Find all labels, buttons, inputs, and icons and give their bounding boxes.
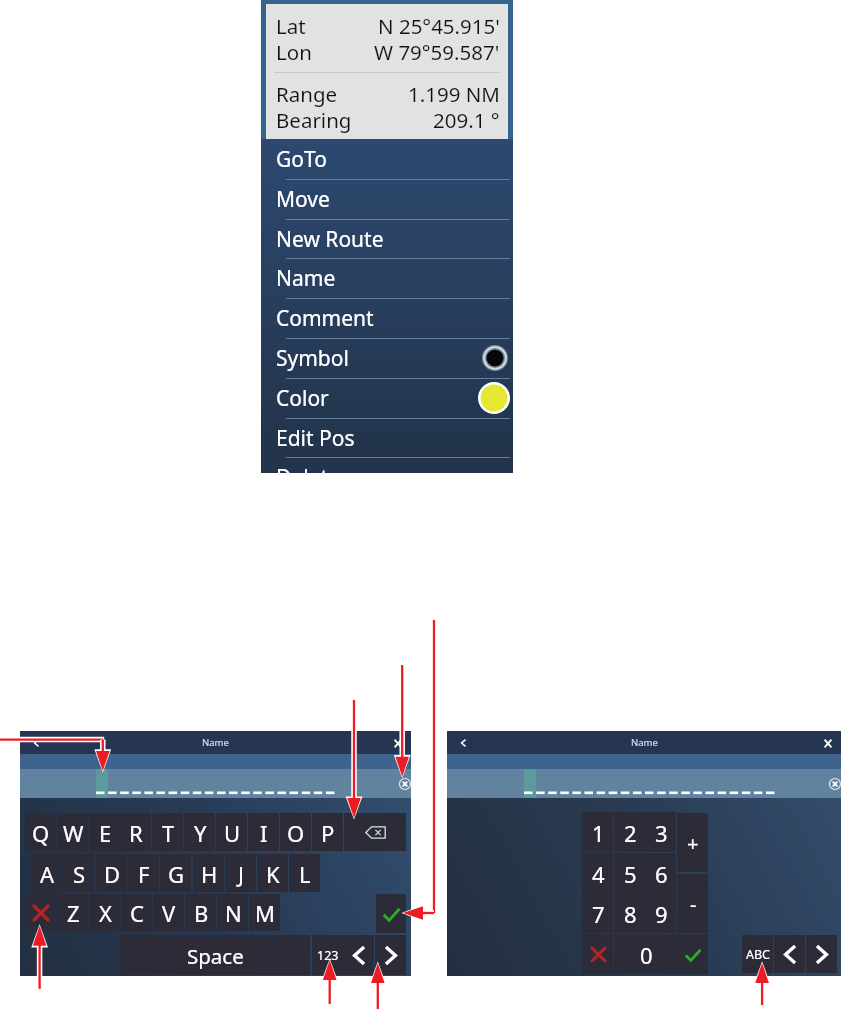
staticText: Bearing bbox=[276, 106, 352, 134]
button[interactable]: Next bbox=[375, 935, 407, 976]
staticText: Lon bbox=[276, 38, 312, 66]
button[interactable]: C bbox=[121, 894, 153, 932]
button[interactable]: B bbox=[185, 894, 217, 932]
button[interactable]: 4 bbox=[582, 853, 614, 894]
button[interactable]: X bbox=[89, 894, 121, 932]
button[interactable]: K bbox=[257, 854, 289, 893]
button[interactable]: Clear text bbox=[829, 778, 841, 790]
staticText: T bbox=[162, 818, 175, 848]
staticText: B bbox=[194, 898, 209, 928]
staticText: Name bbox=[631, 736, 658, 749]
button[interactable]: H bbox=[193, 854, 225, 893]
staticText: - bbox=[690, 891, 697, 918]
button[interactable]: S bbox=[63, 854, 95, 893]
button[interactable]: Move bbox=[261, 179, 513, 219]
button[interactable]: 5 bbox=[614, 853, 646, 894]
button[interactable]: I bbox=[248, 813, 280, 852]
staticText: Y bbox=[194, 818, 207, 848]
button[interactable]: Cancel bbox=[25, 894, 57, 932]
staticText: 1.199 NM bbox=[408, 80, 500, 108]
button[interactable]: J bbox=[225, 854, 257, 893]
staticText: Range bbox=[276, 80, 338, 108]
button[interactable]: E bbox=[89, 813, 121, 852]
button[interactable]: R bbox=[120, 813, 152, 852]
button[interactable]: Accept bbox=[376, 894, 407, 934]
staticText: Name bbox=[276, 264, 336, 293]
staticText: 6 bbox=[655, 859, 668, 889]
button[interactable]: L bbox=[289, 854, 321, 893]
button[interactable]: 123 bbox=[312, 935, 344, 976]
button[interactable]: Symbol bbox=[261, 338, 513, 378]
button[interactable]: N bbox=[217, 894, 249, 932]
button[interactable]: M bbox=[249, 894, 281, 932]
button[interactable]: U bbox=[216, 813, 248, 852]
staticText: Edit Pos bbox=[276, 424, 355, 453]
staticText: 8 bbox=[624, 899, 637, 929]
staticText: Comment bbox=[276, 304, 374, 333]
button[interactable]: Back bbox=[28, 735, 44, 751]
button[interactable]: 3 bbox=[645, 812, 677, 853]
button[interactable]: New Route bbox=[261, 219, 513, 259]
staticText: 5 bbox=[624, 859, 637, 889]
staticText: Z bbox=[67, 898, 80, 928]
staticText: 209.1 ° bbox=[433, 106, 500, 134]
button[interactable]: Backspace bbox=[344, 813, 407, 852]
button[interactable]: Previous bbox=[343, 935, 375, 976]
staticText: H bbox=[201, 859, 218, 889]
button[interactable]: - bbox=[677, 874, 709, 934]
staticText: V bbox=[162, 898, 176, 928]
button[interactable]: Close bbox=[390, 735, 406, 751]
button[interactable]: Accept bbox=[677, 934, 709, 975]
button[interactable]: O bbox=[280, 813, 312, 852]
staticText: X bbox=[99, 898, 112, 928]
staticText: + bbox=[687, 830, 699, 857]
button[interactable]: Delete bbox=[261, 457, 513, 497]
button[interactable]: 8 bbox=[614, 893, 646, 934]
button[interactable]: 0 bbox=[614, 934, 678, 975]
staticText: 3 bbox=[655, 818, 668, 848]
staticText: N 25°45.915' bbox=[378, 12, 500, 40]
button[interactable]: + bbox=[677, 813, 709, 873]
button[interactable]: A bbox=[31, 854, 63, 893]
button[interactable]: Y bbox=[184, 813, 216, 852]
button[interactable]: Back bbox=[455, 735, 471, 751]
staticText: A bbox=[40, 859, 55, 889]
button[interactable]: P bbox=[312, 813, 344, 852]
button[interactable]: T bbox=[152, 813, 184, 852]
button[interactable]: 7 bbox=[582, 893, 614, 934]
staticText: L bbox=[299, 859, 311, 889]
button[interactable]: D bbox=[96, 854, 128, 893]
staticText: J bbox=[238, 859, 245, 889]
button[interactable]: GoTo bbox=[261, 139, 513, 179]
staticText: Symbol bbox=[276, 344, 349, 373]
staticText: New Route bbox=[276, 225, 384, 254]
button[interactable]: Comment bbox=[261, 298, 513, 338]
staticText: 4 bbox=[592, 859, 605, 889]
button[interactable]: Previous bbox=[774, 935, 806, 974]
button[interactable]: Name bbox=[261, 258, 513, 298]
button[interactable]: Space bbox=[120, 935, 311, 976]
button[interactable]: 1 bbox=[582, 812, 614, 853]
button[interactable]: V bbox=[153, 894, 185, 932]
button[interactable]: Clear text bbox=[399, 778, 411, 790]
button[interactable]: G bbox=[160, 854, 192, 893]
button[interactable]: Z bbox=[57, 894, 89, 932]
staticText: 7 bbox=[592, 899, 605, 929]
staticText: Move bbox=[276, 185, 330, 214]
staticText: Q bbox=[32, 818, 50, 848]
button[interactable]: ABC bbox=[742, 935, 774, 974]
button[interactable]: Next bbox=[806, 935, 838, 974]
button[interactable]: Cancel bbox=[582, 934, 614, 975]
staticText: K bbox=[266, 859, 280, 889]
staticText: Delete bbox=[276, 463, 340, 492]
button[interactable]: Edit Pos bbox=[261, 418, 513, 458]
button[interactable]: 6 bbox=[645, 853, 677, 894]
button[interactable]: 2 bbox=[614, 812, 646, 853]
button[interactable]: Close bbox=[820, 735, 836, 751]
button[interactable]: Color bbox=[261, 378, 513, 418]
staticText: F bbox=[138, 859, 150, 889]
button[interactable]: W bbox=[57, 813, 89, 852]
button[interactable]: 9 bbox=[645, 893, 677, 934]
button[interactable]: Q bbox=[25, 813, 57, 852]
button[interactable]: F bbox=[128, 854, 160, 893]
